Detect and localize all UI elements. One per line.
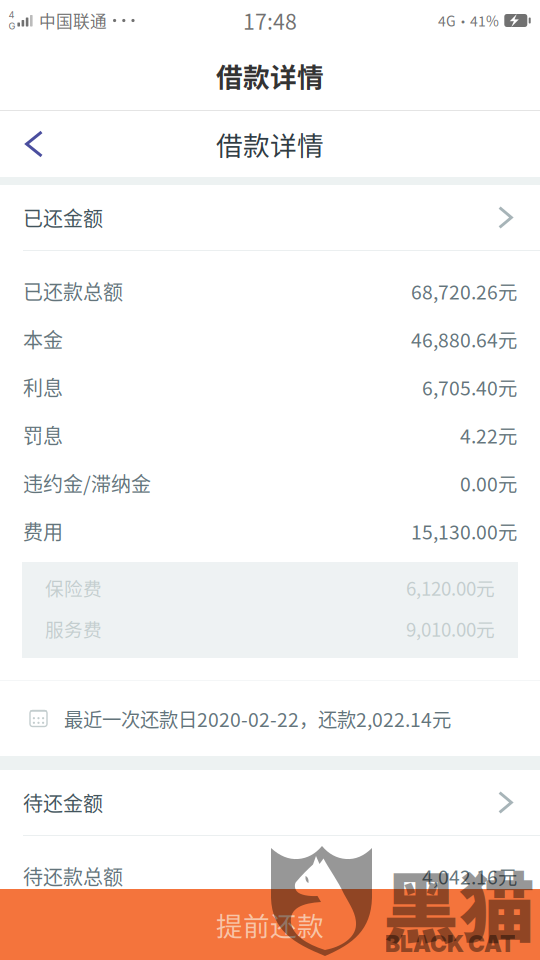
staticText: 提前还款 (216, 905, 324, 944)
button[interactable]: 返回 (0, 111, 68, 177)
staticText: 6,120.00元 (406, 574, 495, 601)
staticText: 借款详情 (216, 56, 324, 95)
staticText: 待还金额 (23, 788, 103, 817)
staticText: 中国联通 (39, 8, 107, 32)
staticText: 已还金额 (23, 203, 103, 232)
staticText: 保险费 (45, 574, 102, 601)
staticText: 9,010.00元 (406, 615, 495, 642)
staticText: 4G (8, 9, 15, 32)
staticText: 利息 (23, 372, 63, 401)
staticText: 最近一次还款日2020-02-22，还款2,022.14元 (64, 704, 451, 732)
staticText: 68,720.26元 (411, 277, 517, 305)
staticText: 黑猫 (383, 848, 535, 958)
staticText: 15,130.00元 (411, 517, 517, 545)
button[interactable]: 提前还款 (0, 889, 540, 960)
staticText: 6,705.40元 (422, 373, 517, 401)
staticText: 4,042.16元 (422, 862, 517, 890)
staticText: 待还款总额 (23, 861, 123, 890)
button[interactable]: 已还金额 (0, 185, 540, 250)
staticText: 服务费 (45, 615, 102, 642)
staticText: 0.00元 (460, 469, 517, 497)
staticText: 违约金/滞纳金 (23, 468, 151, 497)
button[interactable]: 待还金额 (0, 770, 540, 835)
staticText: 17:48 (243, 5, 297, 36)
staticText: 4G·41% (438, 10, 499, 31)
staticText: 46,880.64元 (411, 325, 517, 353)
staticText: 本金 (23, 324, 63, 353)
staticText: 借款详情 (216, 125, 324, 163)
staticText: 罚息 (23, 420, 63, 449)
staticText: 4.22元 (460, 421, 517, 449)
staticText: 已还款总额 (23, 276, 123, 305)
staticText: 费用 (23, 516, 63, 545)
staticText: BLACK CAT (385, 930, 515, 957)
